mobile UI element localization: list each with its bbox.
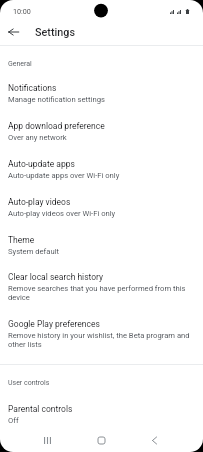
staticText: Google Play preferences bbox=[8, 319, 100, 329]
staticText: Clear local search history bbox=[8, 272, 104, 282]
staticText: Auto-update apps over Wi-Fi only bbox=[8, 171, 120, 180]
button[interactable]: Auto-play videos bbox=[0, 188, 203, 226]
staticText: Auto-play videos over Wi-Fi only bbox=[8, 209, 116, 218]
staticText: Theme bbox=[8, 235, 35, 245]
staticText: Auto-play videos bbox=[8, 197, 71, 207]
button[interactable]: Google Play preferences bbox=[0, 310, 203, 357]
staticText: General bbox=[8, 60, 32, 68]
staticText: Off bbox=[8, 416, 19, 425]
staticText: Auto-update apps bbox=[8, 159, 75, 169]
staticText: Remove searches that you have performed … bbox=[8, 284, 192, 302]
staticText: Over any network bbox=[8, 133, 67, 142]
button[interactable]: Auto-update apps bbox=[0, 150, 203, 188]
button[interactable]: Back bbox=[3, 21, 24, 42]
staticText: Parental controls bbox=[8, 404, 73, 414]
staticText: Remove history in your wishlist, the Bet… bbox=[8, 331, 192, 349]
button[interactable]: Back bbox=[143, 429, 165, 451]
staticText: Settings bbox=[35, 26, 75, 39]
staticText: System default bbox=[8, 247, 59, 256]
button[interactable]: Recent apps bbox=[37, 429, 59, 451]
button[interactable]: Clear local search history bbox=[0, 263, 203, 310]
staticText: User controls bbox=[8, 379, 50, 387]
button[interactable]: Theme bbox=[0, 226, 203, 264]
staticText: 10:00 bbox=[13, 7, 31, 15]
button[interactable]: App download preference bbox=[0, 112, 203, 150]
button[interactable]: Home bbox=[90, 429, 112, 451]
staticText: App download preference bbox=[8, 121, 105, 131]
staticText: Manage notification settings bbox=[8, 95, 105, 104]
button[interactable]: Notifications bbox=[0, 74, 203, 112]
staticText: Notifications bbox=[8, 83, 57, 93]
button[interactable]: Parental controls bbox=[0, 395, 203, 433]
